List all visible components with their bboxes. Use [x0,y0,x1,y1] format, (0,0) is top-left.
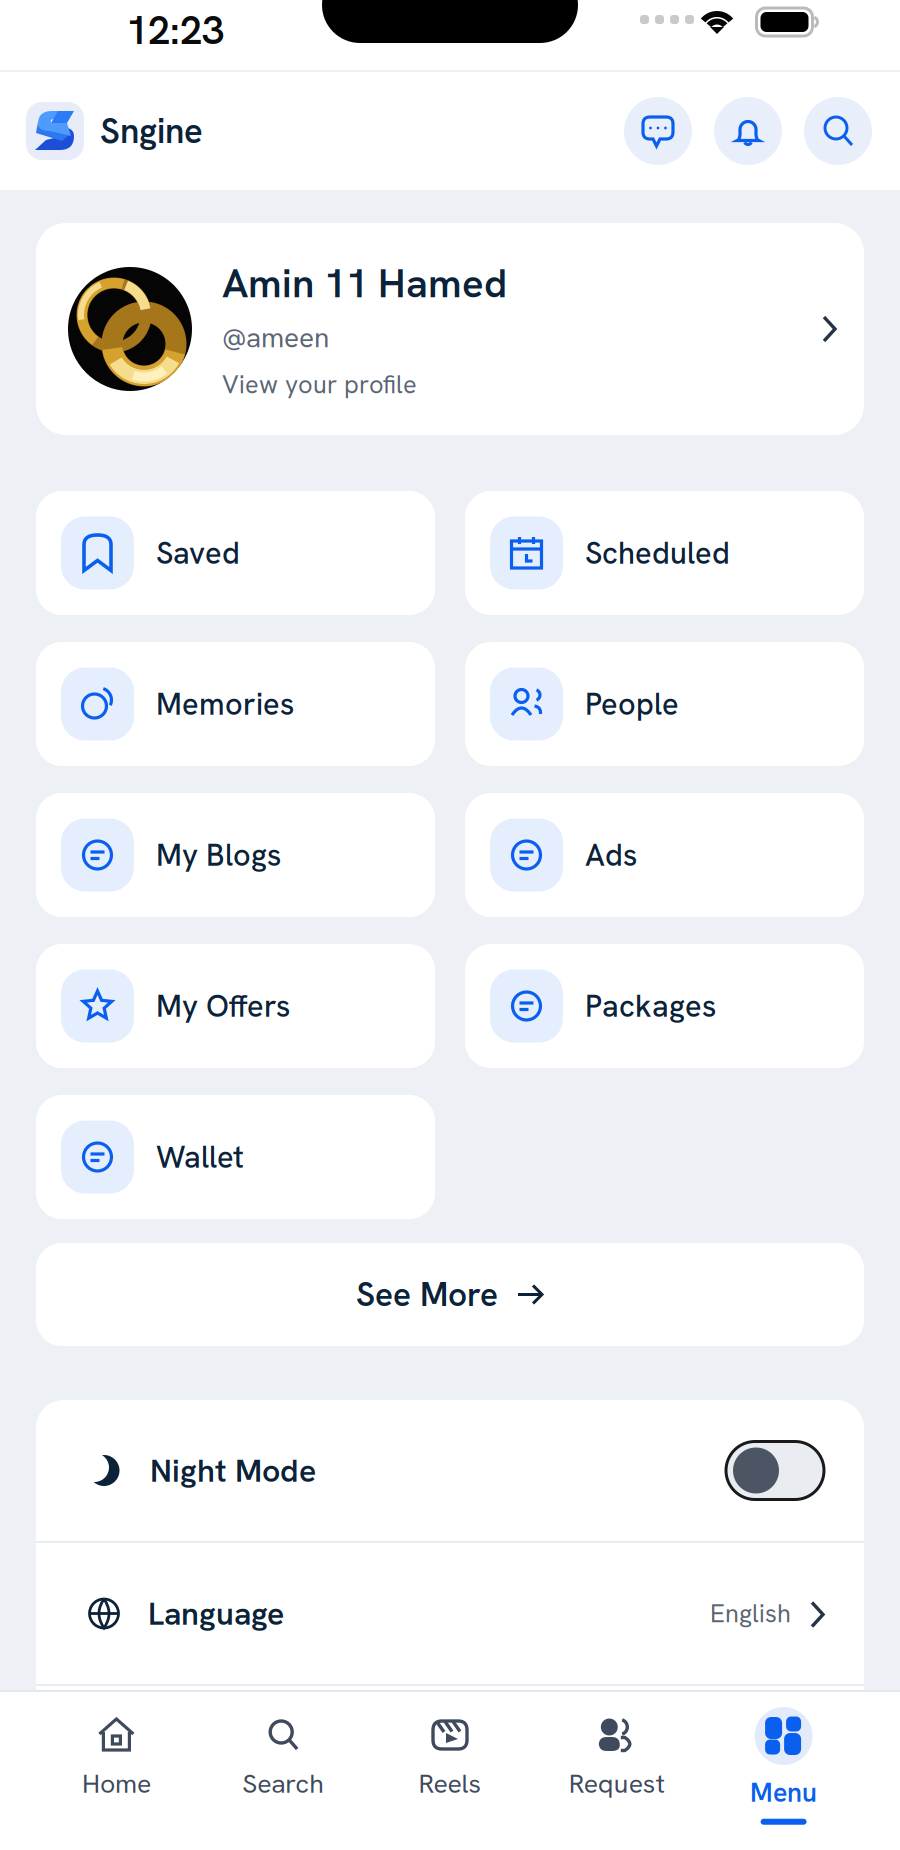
staticText: Language [148,1593,284,1634]
button[interactable]: Home [33,1692,200,1850]
staticText: Reels [418,1766,481,1801]
staticText: Packages [585,986,716,1026]
button[interactable]: Request [533,1692,700,1850]
button[interactable]: Amin 11 Hamed [36,223,864,435]
staticText: View your profile [222,368,417,401]
staticText: Night Mode [150,1450,316,1491]
staticText: Request [569,1766,665,1801]
staticText: Sngine [100,108,203,154]
staticText: Saved [156,533,240,573]
staticText: Memories [156,684,294,724]
staticText: People [585,684,679,724]
staticText: See More [356,1273,498,1316]
button[interactable]: Wallet [36,1095,435,1219]
staticText: English [710,1597,791,1630]
button[interactable]: Saved [36,491,435,615]
button[interactable]: Search [804,97,872,165]
staticText: Scheduled [585,533,730,573]
staticText: Search [242,1766,324,1801]
button[interactable]: Reels [367,1692,533,1850]
staticText: @ameen [222,319,329,356]
button[interactable]: Memories [36,642,435,766]
staticText: Ads [585,835,637,875]
staticText: Menu [750,1775,817,1810]
button[interactable]: Language [36,1543,864,1684]
staticText: 12:23 [126,4,224,56]
button[interactable]: Packages [465,944,864,1068]
button[interactable]: Sngine [0,102,203,160]
button[interactable]: Messages [624,97,692,165]
staticText: Amin 11 Hamed [222,257,507,309]
staticText: Home [82,1766,151,1801]
button[interactable]: My Blogs [36,793,435,917]
button[interactable]: People [465,642,864,766]
staticText: Wallet [156,1137,244,1177]
button[interactable]: Menu [700,1692,867,1850]
button[interactable]: Night Mode [36,1400,864,1541]
button[interactable]: Search [200,1692,367,1850]
button[interactable]: Notifications [714,97,782,165]
button[interactable]: See More [36,1243,864,1346]
staticText: My Blogs [156,835,281,875]
button[interactable]: Scheduled [465,491,864,615]
staticText: My Offers [156,986,290,1026]
button[interactable]: My Offers [36,944,435,1068]
button[interactable]: Ads [465,793,864,917]
